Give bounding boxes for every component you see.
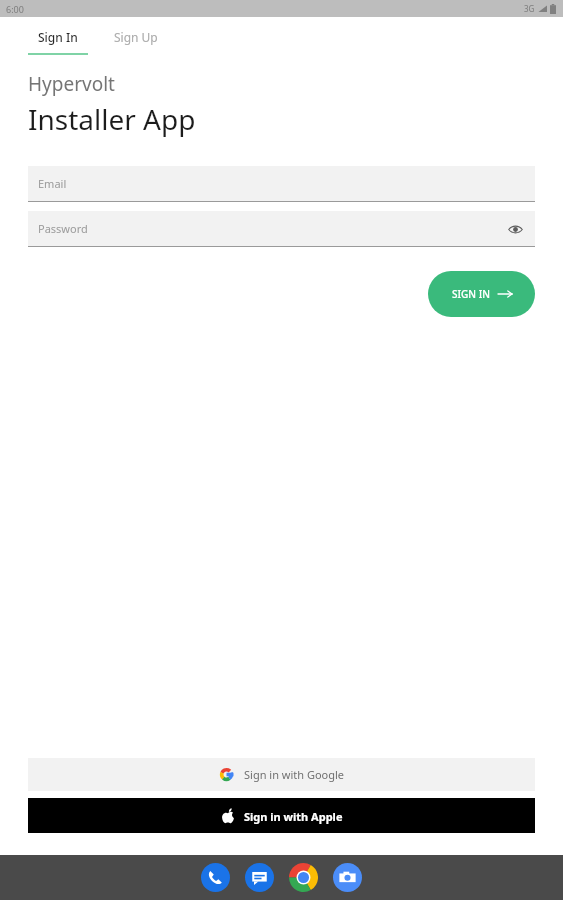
staticText: Sign in with Google: [244, 767, 345, 782]
staticText: Password: [38, 221, 88, 236]
staticText: 3G: [524, 3, 535, 14]
staticText: Installer App: [28, 100, 196, 138]
button[interactable]: Phone: [201, 863, 230, 892]
staticText: 6:00: [6, 3, 24, 15]
button[interactable]: Password: [28, 211, 535, 246]
button[interactable]: Sign Up: [106, 24, 166, 55]
staticText: Sign Up: [114, 29, 158, 45]
button[interactable]: Sign in with Apple: [28, 798, 535, 833]
button[interactable]: Email: [28, 166, 535, 201]
button[interactable]: Sign In: [28, 24, 88, 55]
staticText: Hypervolt: [28, 71, 115, 97]
button[interactable]: Show password: [505, 219, 525, 239]
button[interactable]: Messages: [245, 863, 274, 892]
button[interactable]: Sign in with Google: [28, 758, 535, 791]
button[interactable]: SIGN IN: [428, 271, 535, 317]
button[interactable]: Camera: [333, 863, 362, 892]
staticText: Email: [38, 176, 67, 191]
button[interactable]: Chrome: [289, 863, 318, 892]
staticText: Sign In: [38, 29, 78, 45]
staticText: Sign in with Apple: [244, 809, 343, 824]
staticText: SIGN IN: [452, 287, 490, 301]
